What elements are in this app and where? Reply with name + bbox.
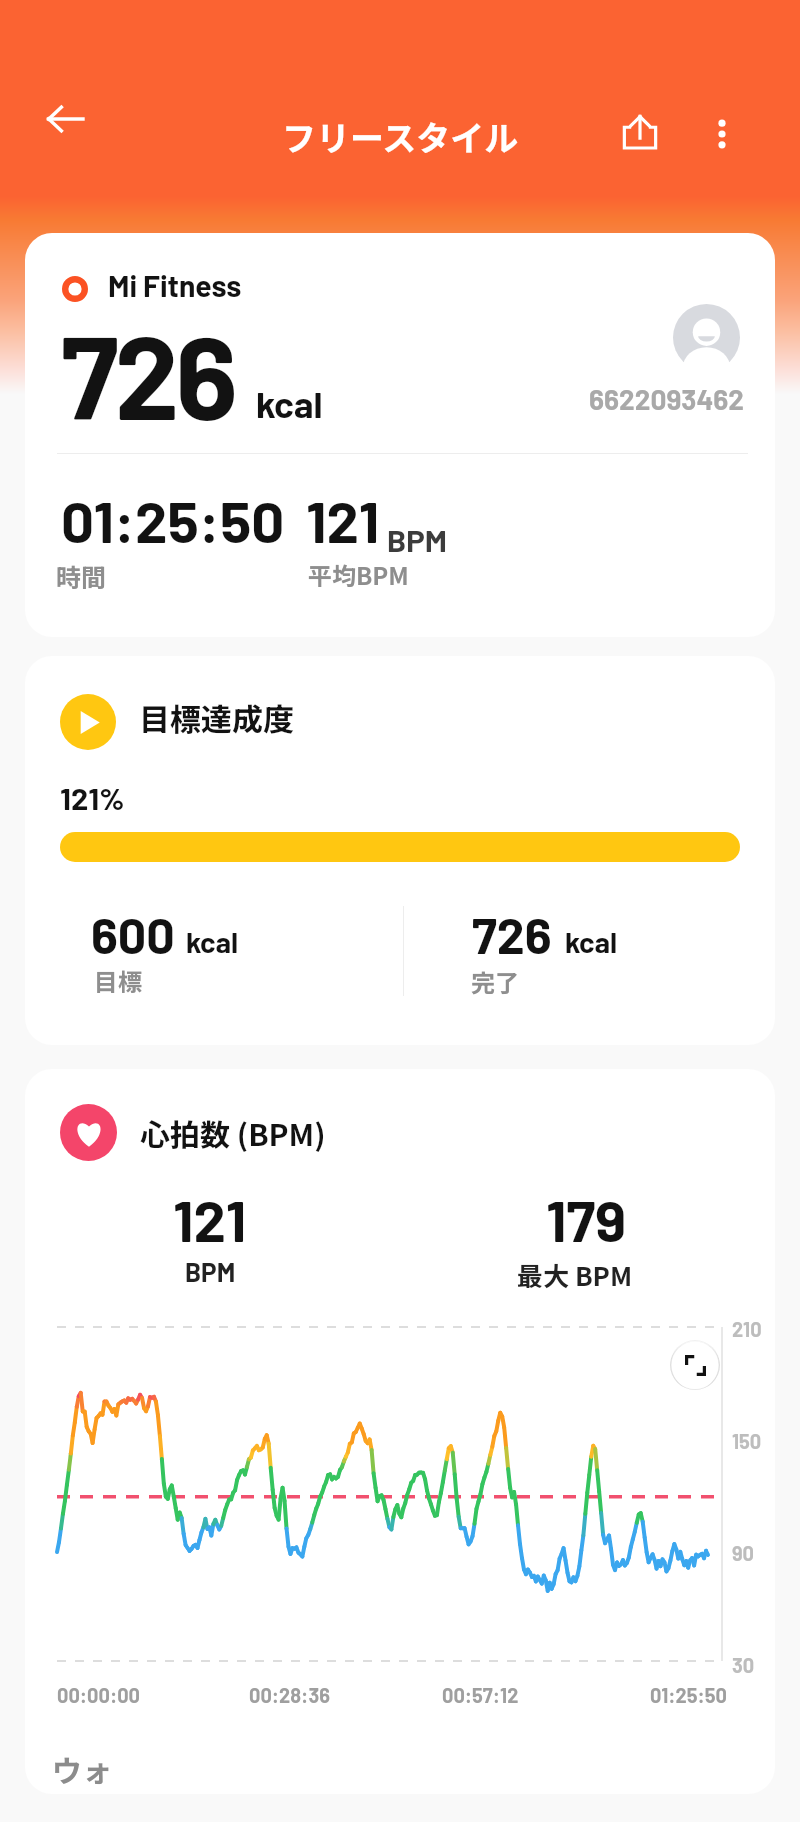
button[interactable]: Back <box>29 83 101 155</box>
button[interactable]: Share <box>604 96 676 168</box>
staticText: kcal <box>565 924 618 959</box>
staticText: 心拍数 (BPM) <box>140 1111 326 1154</box>
button[interactable]: More options <box>686 98 758 170</box>
staticText: 時間 <box>56 558 107 594</box>
staticText: 01:25:50 <box>61 485 285 555</box>
staticText: 210 <box>732 1317 762 1341</box>
staticText: 121% <box>60 779 125 816</box>
button[interactable]: Expand chart <box>670 1340 720 1390</box>
staticText: 完了 <box>471 964 519 999</box>
staticText: 600 <box>91 904 175 964</box>
staticText: 150 <box>732 1429 762 1453</box>
staticText: 121 <box>306 485 380 555</box>
button[interactable]: Workout summary <box>25 233 775 637</box>
staticText: 726 <box>61 304 234 443</box>
button[interactable]: Goal achievement <box>25 656 775 1045</box>
button[interactable]: Heart rate <box>25 1069 775 1794</box>
staticText: 179 <box>546 1184 627 1254</box>
staticText: 00:28:36 <box>249 1683 330 1707</box>
staticText: 6622093462 <box>589 382 745 416</box>
staticText: Mi Fitness <box>108 267 242 303</box>
staticText: 00:00:00 <box>57 1683 140 1707</box>
staticText: kcal <box>256 381 323 425</box>
staticText: BPM <box>185 1256 236 1287</box>
staticText: フリースタイル <box>282 112 519 161</box>
staticText: 平均BPM <box>308 557 409 592</box>
staticText: kcal <box>186 924 239 959</box>
staticText: 90 <box>732 1541 755 1565</box>
staticText: 30 <box>732 1653 755 1677</box>
staticText: 121 <box>173 1184 247 1254</box>
staticText: 最大 BPM <box>517 1256 633 1294</box>
staticText: 目標 <box>94 963 142 998</box>
staticText: 目標達成度 <box>139 695 294 740</box>
staticText: ウォ <box>52 1747 112 1790</box>
staticText: 00:57:12 <box>442 1683 519 1707</box>
staticText: 726 <box>472 904 552 964</box>
staticText: BPM <box>387 521 447 558</box>
staticText: 01:25:50 <box>650 1683 727 1707</box>
